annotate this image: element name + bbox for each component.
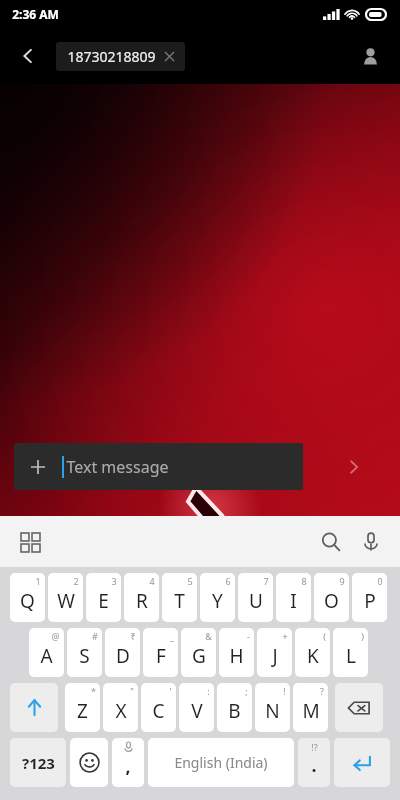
button[interactable]: + (257, 628, 292, 677)
button[interactable]: Text message (14, 443, 303, 490)
staticText: 1 (35, 575, 41, 587)
staticText: ₹ (130, 630, 136, 642)
staticText: R (136, 588, 148, 614)
staticText: Y (212, 588, 223, 614)
button[interactable]: ? (293, 683, 328, 732)
staticText: ' (169, 685, 172, 697)
staticText: ) (361, 630, 364, 642)
staticText: - (247, 630, 250, 642)
staticText: : (207, 685, 210, 697)
button[interactable]: ( (295, 628, 330, 677)
staticText: E (98, 588, 109, 614)
button[interactable]: Enter (334, 738, 390, 787)
staticText: C (152, 698, 165, 724)
staticText: 4 (149, 575, 155, 587)
staticText: W (57, 588, 75, 614)
button[interactable]: 1 (10, 573, 45, 622)
staticText: O (324, 588, 339, 614)
staticText: 8 (301, 575, 307, 587)
button[interactable]: Backspace (335, 683, 383, 732)
staticText: Q (20, 588, 35, 614)
button[interactable]: _ (143, 628, 178, 677)
button[interactable]: Search (312, 523, 350, 561)
button[interactable]: ₹ (105, 628, 140, 677)
staticText: D (116, 643, 130, 669)
button[interactable]: @ (29, 628, 64, 677)
button[interactable] (10, 683, 58, 732)
staticText: Z (77, 698, 88, 724)
button[interactable]: - (219, 628, 254, 677)
staticText: " (130, 685, 134, 697)
staticText: ?123 (22, 753, 55, 773)
staticText: 7 (263, 575, 269, 587)
button[interactable]: Period (298, 738, 330, 787)
staticText: * (91, 685, 96, 697)
button[interactable]: * (65, 683, 100, 732)
staticText: U (249, 588, 263, 614)
staticText: N (265, 698, 280, 724)
staticText: B (228, 698, 241, 724)
button[interactable]: 6 (200, 573, 235, 622)
staticText: 18730218809 (67, 47, 156, 66)
button[interactable]: Back (8, 36, 48, 76)
staticText: A (40, 643, 53, 669)
button[interactable]: 8 (276, 573, 311, 622)
staticText: 5 (187, 575, 193, 587)
staticText: Text message (66, 456, 169, 478)
staticText: English (India) (174, 753, 268, 772)
staticText: S (79, 643, 90, 669)
staticText: ; (245, 685, 248, 697)
button[interactable]: 3 (86, 573, 121, 622)
button[interactable]: 18730218809 (56, 42, 185, 71)
staticText: 6 (225, 575, 231, 587)
staticText: P (364, 588, 376, 614)
staticText: H (229, 643, 244, 669)
button[interactable]: " (103, 683, 138, 732)
staticText: ( (323, 630, 326, 642)
staticText: L (346, 643, 356, 669)
staticText: !? (311, 741, 318, 753)
staticText: I (290, 588, 297, 614)
button[interactable]: 7 (238, 573, 273, 622)
staticText: ! (283, 685, 286, 697)
staticText: 2:36 AM (12, 6, 59, 22)
staticText: + (282, 630, 288, 642)
button[interactable]: Contacts (348, 34, 392, 78)
button[interactable]: 2 (48, 573, 83, 622)
button[interactable]: ! (255, 683, 290, 732)
button[interactable]: 9 (314, 573, 349, 622)
staticText: 0 (377, 575, 383, 587)
button[interactable]: 5 (162, 573, 197, 622)
button[interactable]: ' (141, 683, 176, 732)
button[interactable]: 4 (124, 573, 159, 622)
staticText: T (174, 588, 185, 614)
button[interactable]: Send (330, 443, 377, 490)
button[interactable]: ) (333, 628, 368, 677)
button[interactable]: Symbols (10, 738, 66, 787)
staticText: K (307, 643, 319, 669)
staticText: 3 (111, 575, 117, 587)
staticText: J (272, 643, 278, 669)
button[interactable]: : (179, 683, 214, 732)
staticText: 2 (73, 575, 79, 587)
button[interactable]: 0 (352, 573, 387, 622)
staticText: G (192, 643, 206, 669)
staticText: _ (170, 630, 174, 642)
button[interactable]: ; (217, 683, 252, 732)
staticText: V (191, 698, 203, 724)
staticText: F (156, 643, 166, 669)
staticText: . (311, 753, 317, 778)
button[interactable]: English (India) (148, 738, 294, 787)
staticText: , (125, 754, 131, 779)
button[interactable]: Keyboard options (12, 524, 48, 560)
button[interactable]: # (67, 628, 102, 677)
staticText: M (302, 698, 320, 724)
staticText: ? (320, 685, 324, 697)
button[interactable]: Voice input (352, 523, 390, 561)
button[interactable]: Emoji (70, 738, 108, 787)
staticText: 9 (339, 575, 345, 587)
staticText: @ (51, 630, 60, 642)
button[interactable]: Comma (112, 738, 144, 787)
button[interactable]: & (181, 628, 216, 677)
staticText: # (92, 630, 98, 642)
